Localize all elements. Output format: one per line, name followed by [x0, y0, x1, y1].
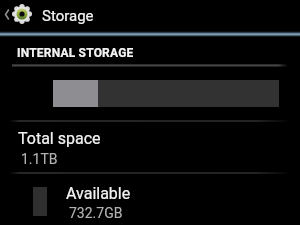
button[interactable]: Available	[0, 173, 300, 225]
button[interactable]: Total space	[0, 121, 300, 172]
staticText: Available	[66, 184, 131, 203]
staticText: Storage	[42, 7, 94, 25]
staticText: Total space	[18, 129, 101, 148]
button[interactable]: Navigate up, Storage	[0, 0, 300, 32]
staticText: 1.1TB	[21, 151, 58, 167]
staticText: INTERNAL STORAGE	[17, 46, 134, 60]
staticText: 732.7GB	[69, 205, 123, 221]
